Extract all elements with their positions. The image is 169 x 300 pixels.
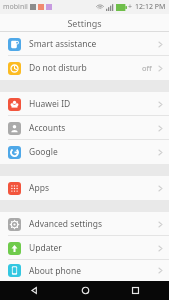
button[interactable]: Recent apps	[118, 281, 152, 300]
staticText: Accounts	[29, 122, 66, 134]
button[interactable]: Updater	[0, 236, 169, 260]
button[interactable]: About phone	[0, 260, 169, 281]
staticText: 12:12 PM	[135, 2, 166, 12]
staticText: Advanced settings	[29, 218, 103, 230]
staticText: Updater	[29, 242, 62, 254]
staticText: Apps	[29, 182, 49, 194]
button[interactable]: Home	[68, 281, 102, 300]
button[interactable]: Accounts	[0, 116, 169, 140]
button[interactable]: Huawei ID	[0, 92, 169, 116]
button[interactable]: Back	[17, 281, 51, 300]
button[interactable]: Smart assistance	[0, 32, 169, 56]
button[interactable]: Apps	[0, 176, 169, 200]
staticText: Smart assistance	[29, 38, 97, 50]
staticText: mobinil	[3, 2, 28, 12]
staticText: off	[142, 63, 152, 73]
staticText: Do not disturb	[29, 62, 87, 74]
staticText: Settings	[67, 17, 102, 29]
button[interactable]: Google	[0, 140, 169, 164]
staticText: +	[128, 2, 133, 12]
staticText: Huawei ID	[29, 98, 71, 110]
staticText: Google	[29, 146, 58, 158]
staticText: About phone	[29, 265, 82, 277]
button[interactable]: Advanced settings	[0, 212, 169, 236]
button[interactable]: Do not disturb	[0, 56, 169, 80]
